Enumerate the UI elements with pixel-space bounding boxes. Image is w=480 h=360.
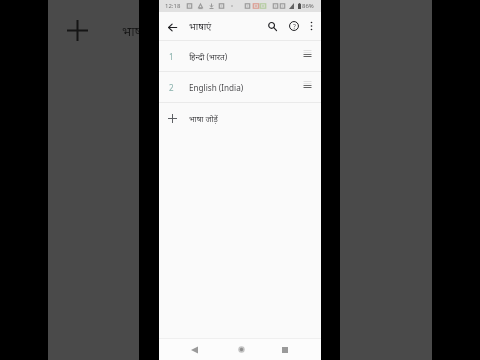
staticText: 1 bbox=[169, 51, 174, 62]
button[interactable]: Back bbox=[184, 339, 204, 360]
button[interactable]: 1 bbox=[159, 41, 321, 71]
button[interactable]: Back bbox=[160, 12, 184, 40]
button[interactable]: Home bbox=[231, 339, 251, 360]
staticText: 12:18 bbox=[165, 2, 181, 10]
staticText: भाषाएं bbox=[189, 20, 212, 33]
staticText: हिन्दी (भारत) bbox=[189, 51, 228, 62]
button[interactable]: Help bbox=[283, 12, 305, 40]
staticText: English (India) bbox=[189, 82, 244, 93]
button[interactable]: 2 bbox=[159, 72, 321, 102]
staticText: ? bbox=[293, 22, 296, 31]
button[interactable]: भाषा जोड़ें bbox=[159, 103, 321, 133]
staticText: भाषाएं bbox=[122, 22, 139, 40]
staticText: 86% bbox=[302, 2, 314, 10]
button[interactable]: Recents bbox=[275, 339, 295, 360]
button[interactable]: More options bbox=[302, 12, 320, 40]
button[interactable]: Search bbox=[261, 12, 283, 40]
staticText: 2 bbox=[169, 82, 174, 93]
staticText: भाषा जोड़ें bbox=[189, 113, 218, 124]
